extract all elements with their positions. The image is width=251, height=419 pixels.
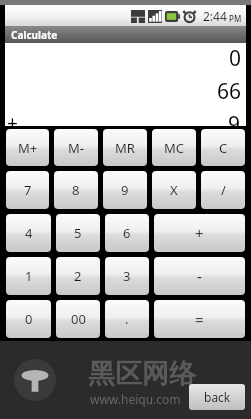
button[interactable]: M-	[54, 129, 98, 166]
staticText: /	[221, 181, 226, 199]
staticText: 9	[228, 110, 241, 126]
staticText: 2	[74, 267, 82, 285]
button[interactable]: -	[154, 257, 245, 295]
button[interactable]: +	[154, 214, 245, 252]
button[interactable]: 00	[56, 300, 100, 338]
button[interactable]: 6	[105, 214, 149, 252]
staticText: M+	[18, 139, 38, 157]
staticText: +	[195, 223, 204, 243]
staticText: 7	[24, 181, 32, 199]
button[interactable]: =	[154, 300, 245, 338]
staticText: 66	[216, 77, 241, 106]
staticText: PM	[229, 13, 242, 24]
button[interactable]: 0	[6, 300, 51, 338]
staticText: C	[219, 139, 228, 157]
staticText: -	[197, 266, 202, 286]
staticText: 9	[121, 181, 129, 199]
staticText: =	[195, 309, 204, 329]
staticText: M-	[68, 139, 84, 157]
staticText: Calculate	[11, 28, 58, 42]
staticText: MC	[164, 139, 185, 157]
button[interactable]: 7	[6, 171, 49, 209]
staticText: X	[170, 181, 178, 199]
button[interactable]: X	[152, 171, 196, 209]
button[interactable]: .	[105, 300, 149, 338]
staticText: www.heiqu.com	[90, 391, 181, 407]
button[interactable]: Back	[189, 384, 245, 410]
button[interactable]: 8	[54, 171, 98, 209]
staticText: 5	[74, 224, 82, 242]
button[interactable]: MC	[152, 129, 196, 166]
button[interactable]: 2	[56, 257, 100, 295]
button[interactable]: 1	[6, 257, 51, 295]
staticText: 1	[25, 267, 33, 285]
button[interactable]: M+	[6, 129, 49, 166]
staticText: MR	[115, 139, 135, 157]
button[interactable]: 5	[56, 214, 100, 252]
button[interactable]: 4	[6, 214, 51, 252]
staticText: 0	[25, 310, 33, 328]
staticText: 6	[123, 224, 131, 242]
button[interactable]: C	[201, 129, 245, 166]
staticText: 4	[25, 224, 33, 242]
button[interactable]: 3	[105, 257, 149, 295]
staticText: 00	[71, 310, 86, 328]
staticText: 2:44	[203, 8, 227, 24]
staticText: .	[125, 310, 129, 328]
staticText: +	[7, 110, 18, 126]
staticText: 3	[123, 267, 131, 285]
button[interactable]: /	[201, 171, 245, 209]
staticText: 黑区网络	[88, 357, 196, 391]
button[interactable]: MR	[103, 129, 147, 166]
button[interactable]: 9	[103, 171, 147, 209]
staticText: 0	[228, 44, 241, 73]
staticText: 8	[72, 181, 80, 199]
staticText: back	[204, 389, 231, 405]
